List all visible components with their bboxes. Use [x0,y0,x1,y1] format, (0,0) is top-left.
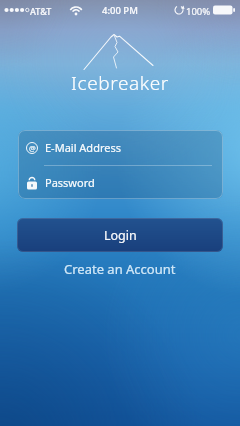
button[interactable]: Create an Account [64,260,176,278]
staticText: AT&T [30,5,52,17]
staticText: Create an Account [64,260,176,278]
staticText: Login [104,227,137,244]
staticText: Icebreaker [71,70,169,96]
button[interactable]: @ [18,130,223,165]
staticText: E-Mail Address [45,140,121,155]
staticText: 4:00 PM [102,4,138,17]
staticText: Password [45,175,95,190]
staticText: 100% [186,5,211,18]
button[interactable]: Login [17,218,223,252]
button[interactable]: Password [18,166,223,199]
staticText: @ [29,143,36,153]
